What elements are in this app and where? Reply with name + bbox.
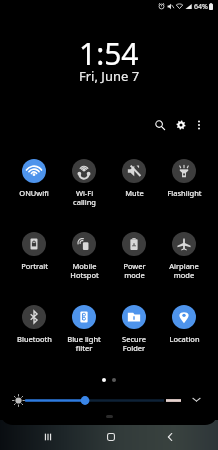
staticText: Portrait — [21, 261, 48, 271]
button[interactable]: Blue light filter — [59, 305, 109, 354]
button[interactable]: Home — [97, 423, 125, 450]
staticText: Blue light filter — [67, 334, 101, 354]
button[interactable]: ONUwifi — [9, 159, 59, 198]
staticText: 1:54 — [79, 33, 139, 74]
staticText: 64% — [194, 2, 208, 12]
button[interactable]: Recents — [34, 423, 62, 450]
staticText: Airplane mode — [169, 261, 199, 281]
staticText: Fri, June 7 — [79, 67, 140, 85]
button[interactable]: Wi-Fi calling — [59, 159, 109, 208]
button[interactable]: Settings — [171, 115, 191, 135]
staticText: Location — [169, 334, 200, 344]
button[interactable]: More options — [189, 115, 209, 135]
staticText: Flashlight — [167, 188, 202, 198]
staticText: Mute — [125, 188, 144, 198]
button[interactable]: Mute — [109, 159, 159, 198]
staticText: ONUwifi — [19, 188, 49, 198]
button[interactable]: Airplane mode — [159, 232, 209, 281]
button[interactable]: Flashlight — [159, 159, 209, 198]
button[interactable]: Power mode — [109, 232, 159, 281]
button[interactable]: Back — [156, 423, 184, 450]
button[interactable]: Search — [150, 115, 170, 135]
button[interactable]: Location — [159, 305, 209, 344]
button[interactable]: Mobile Hotspot — [59, 232, 109, 281]
button[interactable]: Expand — [186, 389, 207, 410]
button[interactable]: Bluetooth — [9, 305, 59, 344]
staticText: Wi-Fi calling — [73, 188, 96, 208]
button[interactable]: Secure Folder — [109, 305, 159, 354]
button[interactable]: Brightness — [6, 388, 30, 412]
staticText: Mobile Hotspot — [70, 261, 99, 281]
staticText: Secure Folder — [122, 334, 146, 354]
staticText: Bluetooth — [17, 334, 52, 344]
button[interactable]: Portrait — [9, 232, 59, 271]
staticText: Power mode — [123, 261, 146, 281]
